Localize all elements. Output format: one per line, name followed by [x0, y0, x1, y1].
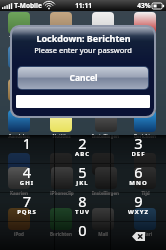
button[interactable]: 5: [55, 164, 110, 192]
staticText: iPod: [14, 231, 24, 237]
staticText: 43%: [137, 1, 151, 10]
staticText: 8: [55, 191, 110, 211]
staticText: 7: [0, 191, 54, 211]
staticText: Safari: [139, 231, 152, 237]
staticText: Instellingen: [92, 190, 119, 196]
staticText: Mail: [56, 35, 66, 41]
staticText: Aandelen: [8, 133, 30, 139]
button[interactable]: 7: [0, 193, 54, 221]
staticText: TUV: [55, 208, 110, 216]
button[interactable]: 9: [111, 193, 166, 221]
staticText: PQRS: [0, 208, 54, 216]
staticText: 1: [0, 133, 54, 153]
staticText: 5: [55, 162, 110, 182]
button[interactable]: 3: [111, 135, 166, 163]
staticText: 3: [111, 133, 166, 153]
staticText: 0: [55, 220, 110, 240]
staticText: ABC: [55, 150, 110, 158]
staticText: 9: [111, 191, 166, 211]
staticText: Safari: [97, 35, 110, 41]
button[interactable]: 1: [0, 135, 54, 163]
staticText: Mail: [98, 231, 108, 237]
staticText: Telefoon: [9, 35, 29, 41]
staticText: Tijd: [141, 190, 150, 196]
staticText: Lockdown: Berichten: [36, 32, 131, 44]
button[interactable]: 8: [55, 193, 110, 221]
staticText: Kaarten: [10, 190, 28, 196]
staticText: Berichten: [50, 231, 72, 237]
staticText: 2: [55, 133, 110, 153]
button[interactable]: 6: [111, 164, 166, 192]
button[interactable]: 2: [55, 135, 110, 163]
staticText: Please enter your password: [34, 45, 132, 55]
staticText: Agenda: [136, 35, 154, 41]
staticText: Cancel: [69, 72, 98, 84]
button[interactable]: 0: [55, 222, 110, 250]
button[interactable]: [0, 222, 54, 250]
staticText: Berichten: [134, 133, 156, 139]
staticText: 4: [0, 162, 54, 182]
staticText: GHI: [0, 179, 54, 187]
button[interactable]: Delete: [111, 222, 166, 250]
staticText: DEF: [111, 150, 166, 158]
staticText: T-Mobile: [14, 1, 42, 10]
staticText: Notities: [52, 133, 71, 139]
button[interactable]: 4: [0, 164, 54, 192]
staticText: JKL: [55, 179, 110, 187]
staticText: 6: [111, 162, 166, 182]
staticText: iPhoneclip: [50, 190, 74, 196]
staticText: WXYZ: [111, 208, 166, 216]
staticText: 11:11: [75, 1, 92, 10]
staticText: Instellingen: [92, 133, 119, 139]
button[interactable]: Cancel: [18, 67, 148, 89]
staticText: MNO: [111, 179, 166, 187]
